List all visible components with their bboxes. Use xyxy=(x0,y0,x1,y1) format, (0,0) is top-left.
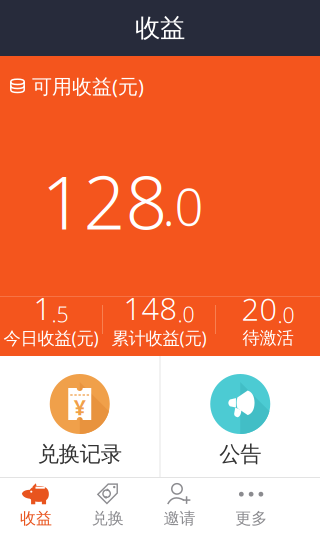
button[interactable]: 收益 xyxy=(0,478,72,533)
staticText: 待激活 xyxy=(242,327,293,348)
staticText: .5 xyxy=(51,300,68,328)
staticText: 148 xyxy=(123,288,177,328)
staticText: 20 xyxy=(241,288,277,329)
button[interactable]: 更多 xyxy=(215,478,287,533)
staticText: ¥ xyxy=(74,393,86,421)
staticText: 兑换 xyxy=(92,509,124,528)
staticText: .0 xyxy=(277,301,294,329)
staticText: 累计收益(元) xyxy=(111,326,206,349)
button[interactable]: ¥ xyxy=(0,356,159,477)
staticText: .0 xyxy=(177,300,194,328)
button[interactable]: 邀请 xyxy=(143,478,215,533)
staticText: 邀请 xyxy=(163,509,195,528)
staticText: 公告 xyxy=(219,441,261,467)
staticText: 收益 xyxy=(20,509,52,528)
button[interactable]: 公告 xyxy=(160,356,320,477)
staticText: .0 xyxy=(162,172,203,240)
button[interactable]: 兑换 xyxy=(72,478,144,533)
staticText: 128 xyxy=(41,152,167,250)
staticText: 兑换记录 xyxy=(38,441,122,467)
staticText: 更多 xyxy=(235,509,267,528)
staticText: 可用收益(元) xyxy=(32,73,144,99)
staticText: 收益 xyxy=(135,12,185,43)
staticText: 今日收益(元) xyxy=(3,326,98,349)
staticText: 1 xyxy=(33,288,51,328)
